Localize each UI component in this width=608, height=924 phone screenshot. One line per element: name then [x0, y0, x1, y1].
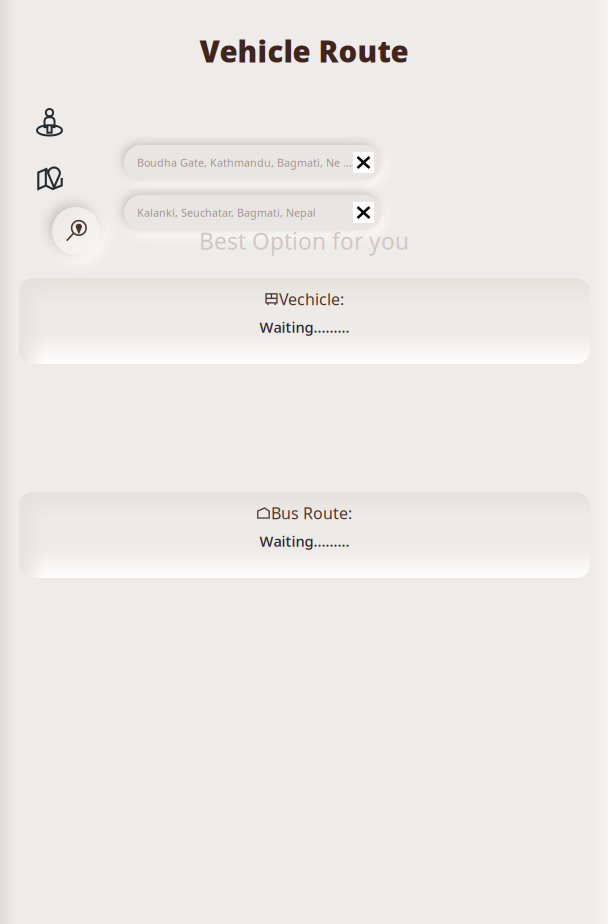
- staticText: Best Option for you: [199, 226, 409, 256]
- staticText: Boudha Gate, Kathmandu, Bagmati, Ne ...: [137, 155, 352, 170]
- button[interactable]: Clear: [353, 152, 374, 173]
- button[interactable]: Clear: [353, 202, 374, 223]
- staticText: Kalanki, Seuchatar, Bagmati, Nepal: [137, 205, 316, 220]
- staticText: Bus Route:: [271, 502, 352, 524]
- staticText: Vechicle:: [279, 288, 344, 310]
- staticText: Waiting.........: [259, 531, 349, 551]
- button[interactable]: Search route: [52, 207, 100, 255]
- staticText: Waiting.........: [259, 317, 349, 337]
- staticText: Vehicle Route: [199, 31, 408, 70]
